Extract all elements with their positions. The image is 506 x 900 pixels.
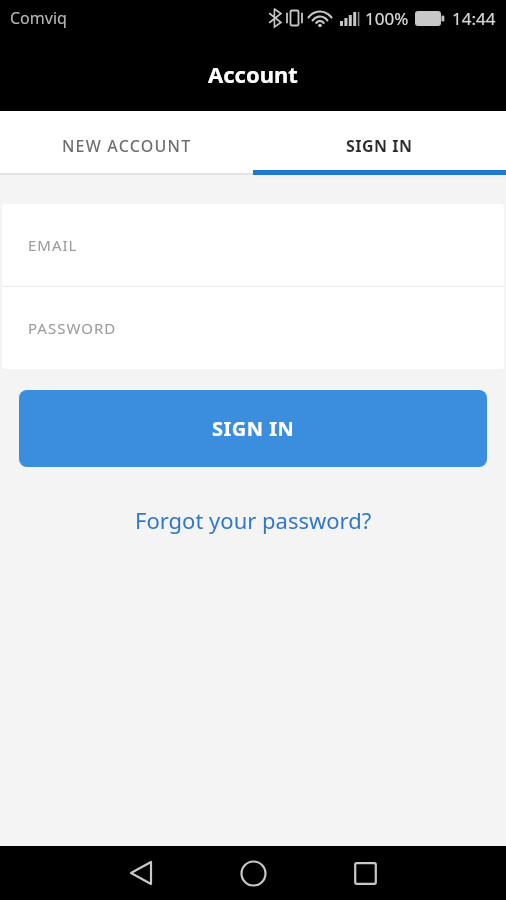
- button[interactable]: PASSWORD: [2, 287, 504, 369]
- staticText: SIGN IN: [212, 415, 295, 442]
- staticText: EMAIL: [28, 235, 78, 255]
- staticText: PASSWORD: [28, 318, 117, 338]
- button[interactable]: EMAIL: [2, 204, 504, 286]
- staticText: Account: [208, 59, 298, 89]
- button[interactable]: SIGN IN: [19, 390, 487, 467]
- staticText: 14:44: [452, 7, 496, 30]
- staticText: 100%: [365, 7, 409, 30]
- staticText: Comviq: [10, 7, 67, 29]
- staticText: SIGN IN: [346, 135, 413, 157]
- staticText: NEW ACCOUNT: [62, 135, 192, 157]
- button[interactable]: [309, 846, 421, 900]
- button[interactable]: Forgot your password?: [135, 505, 372, 535]
- button[interactable]: SIGN IN: [253, 111, 506, 175]
- button[interactable]: [197, 846, 309, 900]
- button[interactable]: [85, 846, 197, 900]
- button[interactable]: NEW ACCOUNT: [0, 111, 253, 175]
